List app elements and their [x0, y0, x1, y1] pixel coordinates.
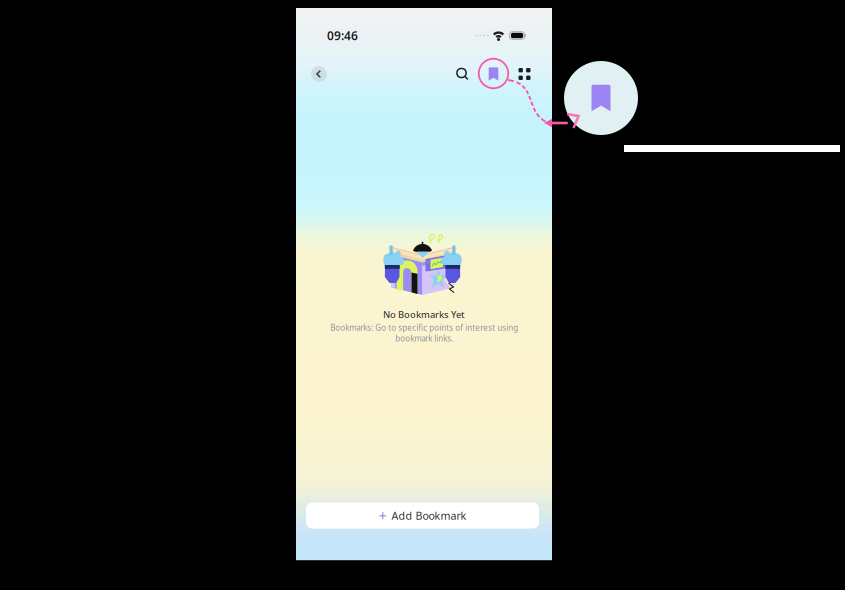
- staticText: Add Bookmark: [391, 508, 466, 523]
- staticText: Bookmarks: Go to specific points of inte…: [330, 322, 518, 344]
- staticText: No Bookmarks Yet: [383, 308, 465, 321]
- staticText: 09:46: [327, 27, 358, 43]
- button[interactable]: Search: [451, 63, 473, 85]
- staticText: +: [378, 506, 386, 525]
- button[interactable]: +: [306, 502, 539, 528]
- button[interactable]: Back: [310, 65, 328, 83]
- button[interactable]: Bookmarks: [482, 63, 504, 85]
- button[interactable]: Grid view: [513, 63, 535, 85]
